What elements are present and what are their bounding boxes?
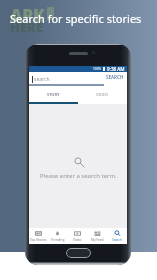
staticText: My Feed [91,238,104,242]
staticText: APK [10,4,45,27]
staticText: STORY [47,92,60,97]
button[interactable]: search [29,72,104,86]
staticText: Video [73,238,82,242]
button[interactable]: Search [107,228,127,244]
button[interactable]: Top Stories [29,228,48,244]
staticText: SEARCH [106,74,124,80]
staticText: HERE [10,18,44,36]
button[interactable]: Video [67,228,87,244]
staticText: 100% [93,67,102,71]
staticText: Top Stories [30,238,47,242]
button[interactable]: My Feed [87,228,107,244]
staticText: Search [112,238,123,242]
staticText: Please enter a search term. [40,172,117,180]
staticText: search [34,76,50,83]
button[interactable]: Trending [48,228,67,244]
button[interactable]: STORY [29,86,78,104]
staticText: 9:38 AM [107,66,125,72]
staticText: Search for specific stories [10,11,142,26]
staticText: Trending [51,238,65,242]
staticText: VIDEO [96,92,109,97]
button[interactable]: SEARCH [106,74,124,80]
button[interactable]: VIDEO [78,86,127,104]
